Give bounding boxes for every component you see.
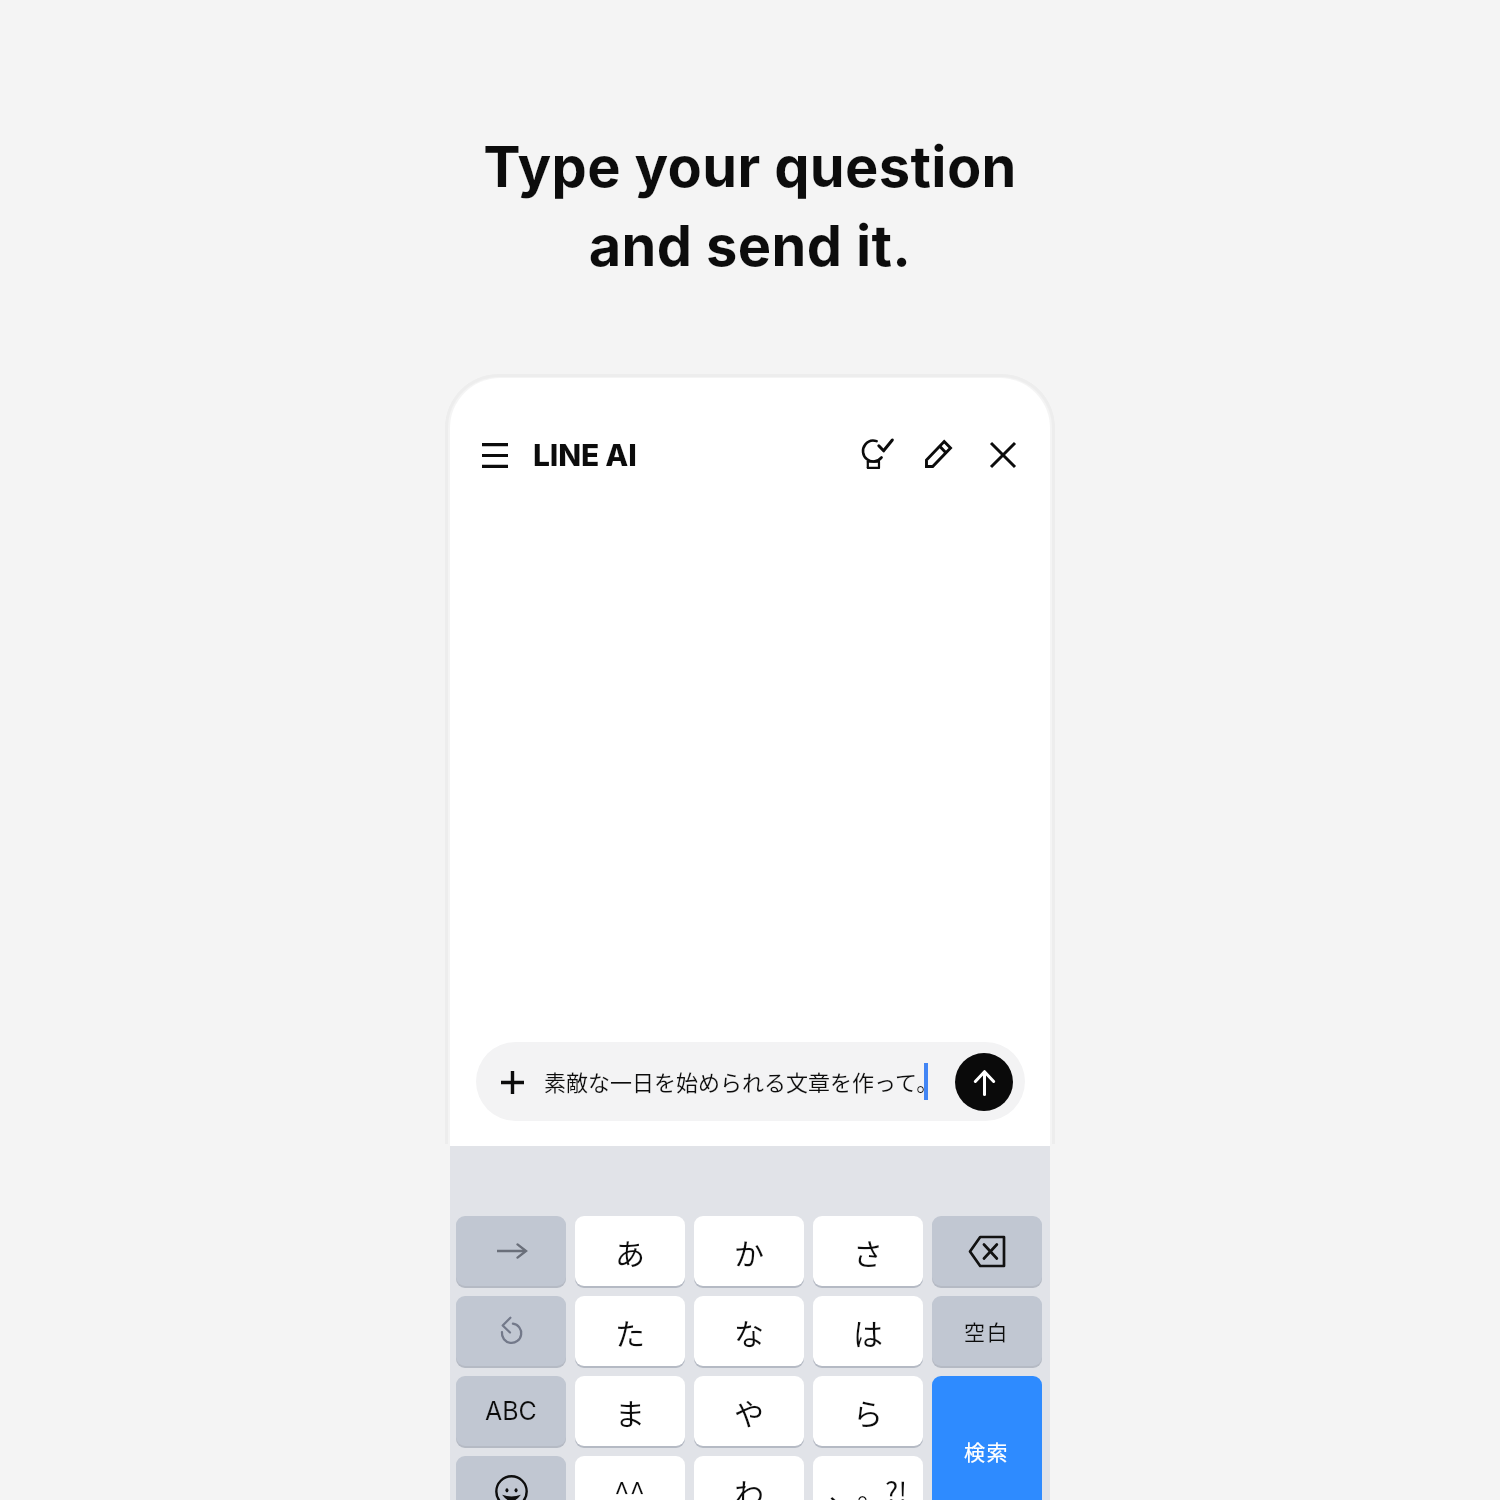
staticText: 空白 (964, 1316, 1010, 1346)
button[interactable]: さ (813, 1216, 923, 1286)
button[interactable]: Menu (466, 426, 524, 484)
staticText: は (853, 1310, 883, 1353)
button[interactable]: な (694, 1296, 804, 1366)
button[interactable]: 検索 (932, 1376, 1042, 1500)
button[interactable]: Suggestions (854, 432, 898, 476)
button[interactable]: ^^ (575, 1456, 685, 1500)
button[interactable]: Edit (916, 432, 960, 476)
button[interactable]: は (813, 1296, 923, 1366)
button[interactable]: ら (813, 1376, 923, 1446)
button[interactable]: 素敵な一日を始められる文章を作って。 (476, 1042, 1025, 1121)
button[interactable]: Close (981, 433, 1025, 477)
staticText: ら (853, 1390, 883, 1433)
staticText: や (734, 1390, 764, 1433)
staticText: ABC (485, 1396, 537, 1426)
button[interactable]: Delete (932, 1216, 1042, 1286)
button[interactable]: Undo (456, 1296, 566, 1366)
button[interactable]: Space (932, 1296, 1042, 1366)
button[interactable]: あ (575, 1216, 685, 1286)
staticText: LINE AI (533, 437, 637, 473)
staticText: Type your question and send it. (483, 133, 1017, 279)
button[interactable]: た (575, 1296, 685, 1366)
button[interactable]: Next candidate (456, 1216, 566, 1286)
staticText: 検索 (964, 1436, 1010, 1466)
staticText: わ (734, 1470, 764, 1500)
staticText: さ (853, 1230, 883, 1273)
staticText: た (615, 1310, 645, 1353)
button[interactable]: ま (575, 1376, 685, 1446)
staticText: な (734, 1310, 764, 1353)
staticText: ^^ (614, 1471, 646, 1500)
staticText: ま (615, 1390, 645, 1433)
staticText: あ (615, 1230, 645, 1273)
button[interactable]: Send (955, 1053, 1013, 1111)
button[interactable]: ABC (456, 1376, 566, 1446)
button[interactable]: や (694, 1376, 804, 1446)
button[interactable]: わ (694, 1456, 804, 1500)
button[interactable]: 、。?! (813, 1456, 923, 1500)
staticText: か (734, 1230, 764, 1273)
staticText: 素敵な一日を始められる文章を作って。 (544, 1065, 939, 1097)
button[interactable]: か (694, 1216, 804, 1286)
button[interactable]: Emoji (456, 1456, 566, 1500)
staticText: 、。?! (829, 1471, 908, 1500)
